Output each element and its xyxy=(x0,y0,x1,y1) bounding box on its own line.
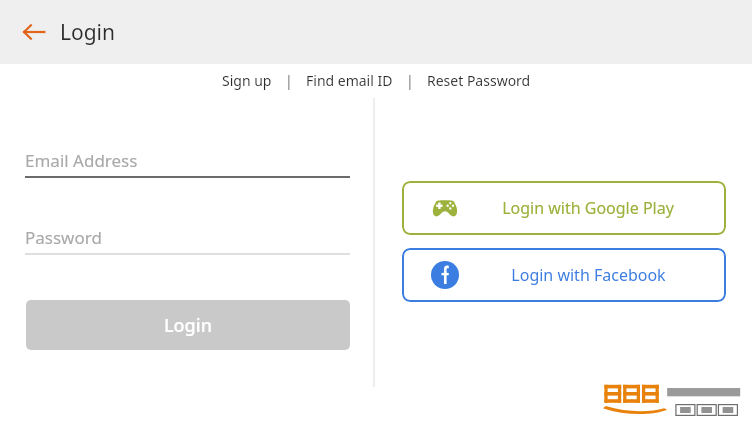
button[interactable]: Find email ID xyxy=(304,68,395,93)
staticText: Reset Password xyxy=(427,71,531,90)
button[interactable]: Back xyxy=(14,12,54,52)
button[interactable]: Login with Google Play xyxy=(402,181,726,235)
staticText: Login xyxy=(164,313,212,338)
staticText: Password xyxy=(25,226,102,249)
button[interactable]: Password xyxy=(25,223,350,251)
staticText: | xyxy=(285,71,293,90)
button[interactable]: Email Address xyxy=(25,146,350,174)
staticText: Login with Facebook xyxy=(511,264,666,286)
button[interactable]: Sign up xyxy=(220,68,274,93)
staticText: | xyxy=(406,71,414,90)
staticText: Sign up xyxy=(222,71,272,90)
staticText: Login with Google Play xyxy=(502,197,674,219)
staticText: Email Address xyxy=(25,149,138,172)
staticText: Login xyxy=(60,18,116,47)
button[interactable]: Login with Facebook xyxy=(402,248,726,302)
button[interactable]: Reset Password xyxy=(425,68,533,93)
staticText: Find email ID xyxy=(306,71,393,90)
button[interactable]: Login xyxy=(26,300,350,350)
